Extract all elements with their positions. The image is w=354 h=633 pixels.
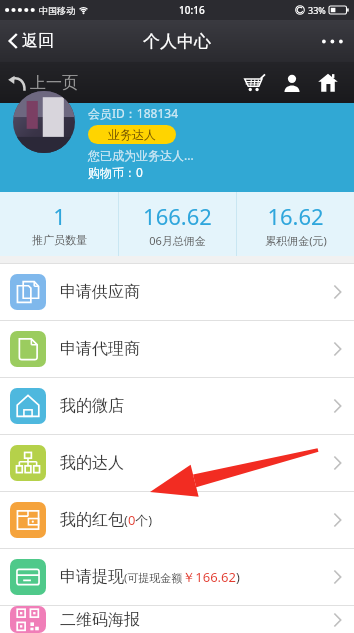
button[interactable]: Avatar — [13, 91, 75, 153]
staticText: 10:16 — [179, 3, 205, 17]
button[interactable]: 16.62 — [237, 192, 354, 256]
staticText: 推广员数量 — [32, 233, 87, 247]
staticText: 业务达人 — [108, 127, 156, 142]
staticText: 我的红包(0个) — [60, 510, 153, 530]
staticText: 个人中心 — [143, 31, 211, 52]
button[interactable]: 我的红包(0个) — [0, 492, 354, 548]
staticText: 166.62 — [143, 201, 212, 231]
staticText: 1 — [53, 201, 66, 231]
button[interactable]: More options — [310, 27, 354, 56]
staticText: 申请提现(可提现金额￥166.62) — [60, 567, 240, 587]
staticText: 上一页 — [30, 73, 78, 93]
button[interactable]: 业务达人 — [88, 125, 176, 144]
staticText: 16.62 — [267, 201, 324, 231]
button[interactable]: Account — [274, 64, 310, 102]
button[interactable]: 1 — [0, 192, 118, 256]
button[interactable]: Cart — [234, 64, 274, 102]
button[interactable]: 上一页 — [0, 68, 88, 98]
staticText: 累积佣金(元) — [265, 233, 327, 248]
button[interactable]: Home — [310, 63, 346, 102]
staticText: 06月总佣金 — [149, 233, 206, 248]
staticText: 我的微店 — [60, 396, 124, 416]
staticText: 会员ID：188134 — [88, 105, 179, 121]
staticText: 购物币：0 — [88, 164, 143, 180]
button[interactable]: 二维码海报 — [0, 606, 354, 633]
button[interactable]: 返回 — [0, 25, 64, 57]
button[interactable]: 我的达人 — [0, 435, 354, 491]
staticText: 我的达人 — [60, 453, 124, 473]
staticText: 二维码海报 — [60, 610, 140, 630]
button[interactable]: 申请代理商 — [0, 321, 354, 377]
button[interactable]: 申请提现(可提现金额￥166.62) — [0, 549, 354, 605]
button[interactable]: 166.62 — [119, 192, 236, 256]
button[interactable]: 申请供应商 — [0, 264, 354, 320]
staticText: 返回 — [22, 31, 54, 51]
staticText: 中国移动 — [39, 5, 75, 16]
button[interactable]: 我的微店 — [0, 378, 354, 434]
staticText: 您已成为业务达人... — [88, 147, 194, 163]
staticText: 申请代理商 — [60, 339, 140, 359]
staticText: 申请供应商 — [60, 282, 140, 302]
staticText: 33% — [308, 4, 326, 16]
